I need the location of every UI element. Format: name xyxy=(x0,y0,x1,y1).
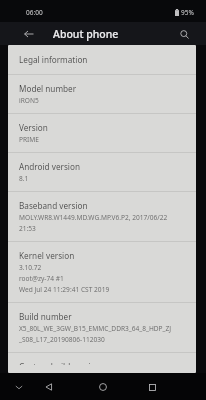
staticText: Wed Jul 24 11:29:41 CST 2019 xyxy=(19,285,110,294)
button[interactable]: Model number xyxy=(8,75,196,113)
staticText: Android version xyxy=(19,161,80,172)
staticText: Custom build version xyxy=(19,361,101,365)
staticText: 95% xyxy=(181,8,194,17)
button[interactable]: Build number xyxy=(8,303,196,352)
button[interactable]: Version xyxy=(8,114,196,152)
button[interactable]: Android version xyxy=(8,153,196,191)
staticText: Build number xyxy=(19,311,72,322)
staticText: iRON5 xyxy=(19,96,39,105)
button[interactable]: Back xyxy=(40,378,58,396)
staticText: 21:53 xyxy=(19,224,36,233)
staticText: About phone xyxy=(53,27,119,41)
button[interactable]: Legal information xyxy=(8,45,196,74)
button[interactable]: Custom build version xyxy=(8,353,196,373)
button[interactable]: Recent apps xyxy=(143,378,161,396)
button[interactable]: Search xyxy=(175,25,193,43)
staticText: Legal information xyxy=(19,54,88,65)
button[interactable]: Home xyxy=(94,378,112,396)
staticText: _S08_L17_20190806-112030 xyxy=(19,335,105,344)
staticText: MOLY.WR8.W1449.MD.WG.MP.V6.P2, 2017/06/2… xyxy=(19,213,168,222)
button[interactable]: Hide xyxy=(10,378,28,396)
staticText: 8.1 xyxy=(19,174,29,183)
staticText: 06:00 xyxy=(26,8,43,17)
staticText: PRIME xyxy=(19,135,39,144)
button[interactable]: Kernel version xyxy=(8,242,196,302)
staticText: 3.10.72 xyxy=(19,263,42,272)
staticText: Model number xyxy=(19,83,77,94)
staticText: Version xyxy=(19,122,48,133)
button[interactable]: Back xyxy=(20,25,38,43)
staticText: root@zy-74 #1 xyxy=(19,274,64,283)
staticText: X5_80L_WE_3GW_B15_EMMC_DDR3_64_8_HDP_ZJ xyxy=(19,324,172,333)
staticText: Kernel version xyxy=(19,250,75,261)
button[interactable]: Baseband version xyxy=(8,192,196,241)
staticText: Baseband version xyxy=(19,200,88,211)
